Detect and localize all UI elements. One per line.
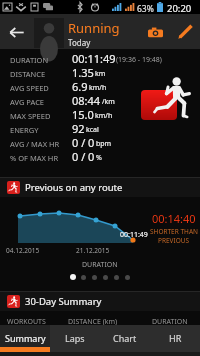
staticText: Running (68, 19, 120, 37)
staticText: HR (169, 332, 182, 344)
staticText: 04.12.2015 (6, 246, 40, 255)
button[interactable]: Profile photo (34, 18, 64, 48)
staticText: (19:36 - 19:48) (116, 55, 162, 65)
staticText: SHORTER THAN (150, 227, 198, 236)
staticText: AVG PACE (10, 97, 72, 107)
staticText: 20:20 (167, 2, 192, 15)
staticText: 30-Day Summary (25, 295, 102, 308)
staticText: Previous on any route (25, 181, 123, 194)
button[interactable]: Previous on any route (0, 178, 200, 197)
staticText: 00:11:49 (72, 51, 116, 66)
staticText: Today (68, 37, 91, 48)
staticText: DURATION (10, 55, 72, 65)
staticText: Summary (5, 332, 46, 344)
button[interactable]: Back (4, 20, 28, 44)
staticText: DURATION (82, 260, 118, 270)
staticText: 15.0 (72, 107, 94, 122)
button[interactable]: Edit (172, 19, 198, 45)
staticText: 00:11:49 (120, 230, 148, 240)
staticText: 21.12.2015 (76, 246, 110, 255)
staticText: bpm (96, 139, 112, 149)
staticText: DISTANCE (km) (68, 317, 118, 326)
button[interactable]: HR (150, 325, 200, 352)
staticText: % OF MAX HR (10, 153, 72, 163)
staticText: 92 (72, 121, 85, 136)
staticText: DURATION (152, 317, 188, 326)
staticText: 0 / 0 (72, 135, 95, 150)
staticText: PREVIOUS (158, 236, 190, 245)
staticText: AVG / MAX HR (10, 139, 72, 149)
staticText: km/h (95, 111, 113, 121)
button[interactable]: 00:11:49 (0, 196, 200, 292)
staticText: % (96, 153, 102, 163)
staticText: km (95, 69, 106, 79)
staticText: WORKOUTS (7, 317, 46, 326)
button[interactable]: Camera (142, 19, 168, 45)
button[interactable]: Chart (100, 325, 150, 352)
staticText: 00:14:40 (152, 211, 196, 226)
staticText: kcal (86, 125, 99, 135)
staticText: 0 / 0 (72, 149, 95, 164)
button[interactable]: 30-Day Summary (0, 292, 200, 311)
staticText: 63% (137, 3, 154, 15)
staticText: 1.35 (72, 65, 94, 80)
staticText: Laps (65, 332, 85, 344)
button[interactable]: Summary (0, 325, 50, 352)
button[interactable]: Laps (50, 325, 100, 352)
staticText: km/h (89, 83, 107, 93)
staticText: /km (102, 97, 115, 107)
staticText: AVG SPEED (10, 83, 72, 93)
staticText: ENERGY (10, 125, 72, 135)
staticText: 08:44 (72, 93, 101, 108)
staticText: Chart (113, 332, 137, 344)
staticText: 6.9 (72, 79, 88, 94)
staticText: DISTANCE (10, 69, 72, 79)
staticText: MAX SPEED (10, 111, 72, 121)
